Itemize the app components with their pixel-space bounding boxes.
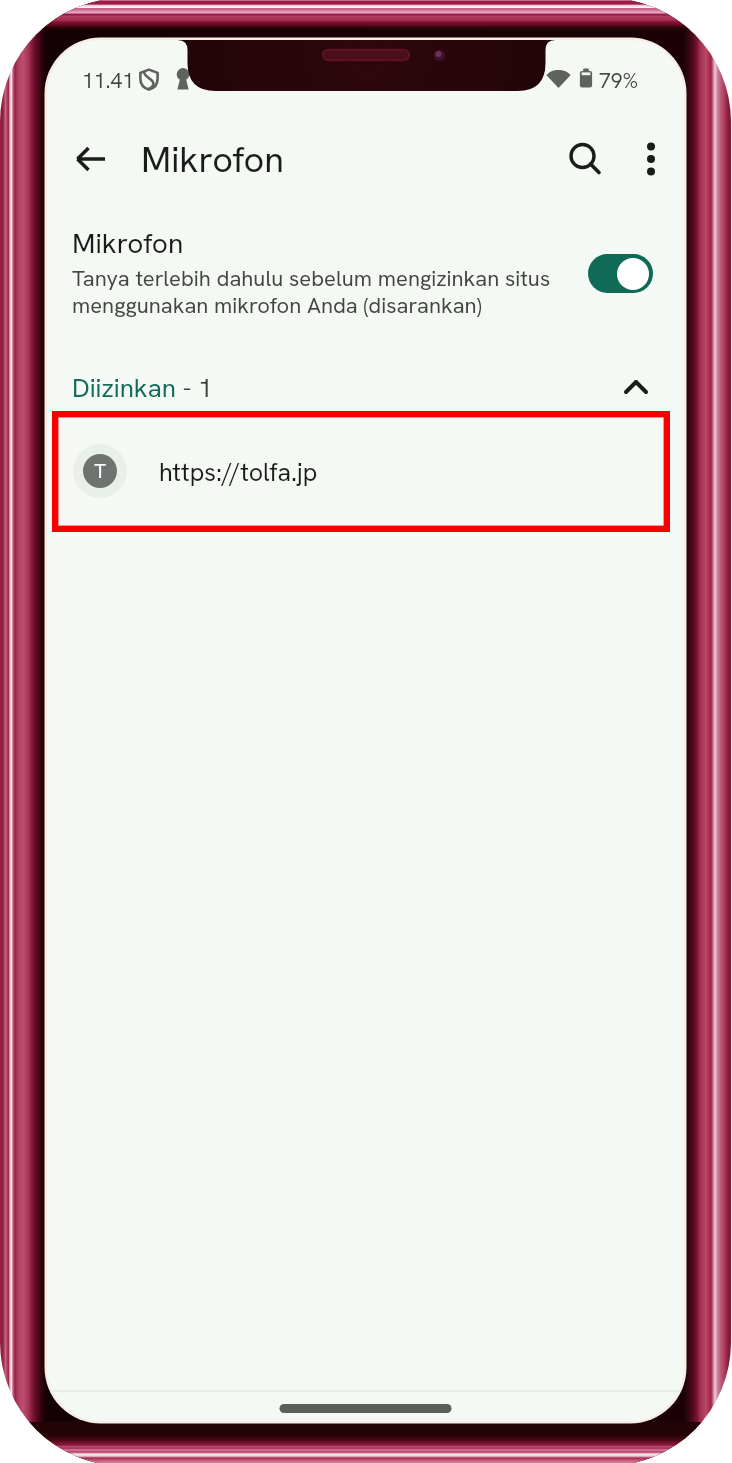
button[interactable]: Mikrofon	[47, 216, 684, 328]
staticText: Tanya terlebih dahulu sebelum mengizinka…	[72, 264, 551, 293]
staticText: 11.41	[82, 67, 135, 94]
button[interactable]: T	[52, 411, 670, 532]
staticText: Mikrofon	[141, 136, 284, 183]
staticText: Diizinkan - 1	[72, 371, 213, 405]
button[interactable]: Back	[63, 131, 119, 187]
button[interactable]: Microphone permission toggle	[588, 254, 653, 293]
staticText: https://tolfa.jp	[159, 456, 318, 489]
staticText: T	[94, 458, 106, 484]
button[interactable]: Search	[557, 131, 613, 187]
staticText: 79%	[599, 67, 639, 94]
staticText: Mikrofon	[72, 225, 184, 261]
staticText: menggunakan mikrofon Anda (disarankan)	[72, 291, 482, 320]
button[interactable]: Diizinkan - 1	[47, 358, 684, 412]
button[interactable]: More options	[623, 131, 679, 187]
